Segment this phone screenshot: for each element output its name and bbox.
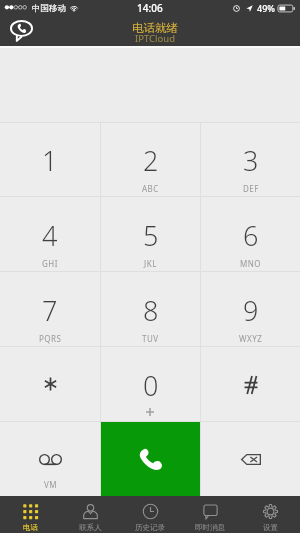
button[interactable]: 电话 (0, 496, 60, 533)
staticText: GHI (42, 258, 58, 269)
staticText: 49% (257, 2, 275, 14)
button[interactable]: 8 (101, 272, 200, 346)
button[interactable]: Delete (201, 422, 300, 496)
staticText: DEF (243, 183, 259, 194)
staticText: 7 (42, 292, 58, 329)
staticText: 5 (143, 217, 159, 254)
staticText: ABC (142, 183, 159, 194)
button[interactable]: 4 (0, 197, 100, 271)
button[interactable]: 5 (101, 197, 200, 271)
staticText: 联系人 (79, 523, 102, 532)
staticText: 即时消息 (195, 523, 225, 532)
button[interactable]: 6 (201, 197, 300, 271)
staticText: VM (44, 479, 57, 490)
staticText: 1 (42, 142, 58, 179)
staticText: 4 (42, 217, 58, 254)
button[interactable]: 0 (101, 347, 200, 421)
button[interactable]: 即时消息 (180, 496, 240, 533)
staticText: 历史记录 (135, 523, 165, 532)
staticText: 电话 (23, 523, 38, 532)
button[interactable]: 设置 (240, 496, 300, 533)
button[interactable]: 3 (201, 123, 300, 196)
staticText: 6 (243, 217, 259, 254)
staticText: 中国移动 (32, 3, 66, 14)
staticText: 3 (243, 142, 259, 179)
staticText: 设置 (263, 523, 278, 532)
button[interactable]: 2 (101, 123, 200, 196)
staticText: IPTCloud (135, 32, 175, 45)
button[interactable]: 联系人 (60, 496, 120, 533)
staticText: PQRS (39, 333, 62, 344)
staticText: 8 (143, 292, 159, 329)
button[interactable] (201, 347, 300, 421)
button[interactable]: 9 (201, 272, 300, 346)
staticText: 电话就绪 (132, 21, 178, 35)
staticText: 0 (143, 367, 159, 404)
staticText: MNO (240, 258, 262, 269)
button[interactable]: 7 (0, 272, 100, 346)
staticText: WXYZ (239, 333, 263, 344)
button[interactable]: 1 (0, 123, 100, 196)
button[interactable] (0, 347, 100, 421)
button[interactable]: Call status (7, 18, 35, 44)
staticText: 2 (143, 142, 159, 179)
button[interactable]: Call (101, 422, 200, 496)
staticText: 14:06 (137, 1, 163, 15)
button[interactable]: Voicemail (0, 422, 100, 496)
button[interactable]: 历史记录 (120, 496, 180, 533)
staticText: TUV (142, 333, 159, 344)
staticText: 9 (243, 292, 259, 329)
staticText: JKL (144, 258, 157, 269)
